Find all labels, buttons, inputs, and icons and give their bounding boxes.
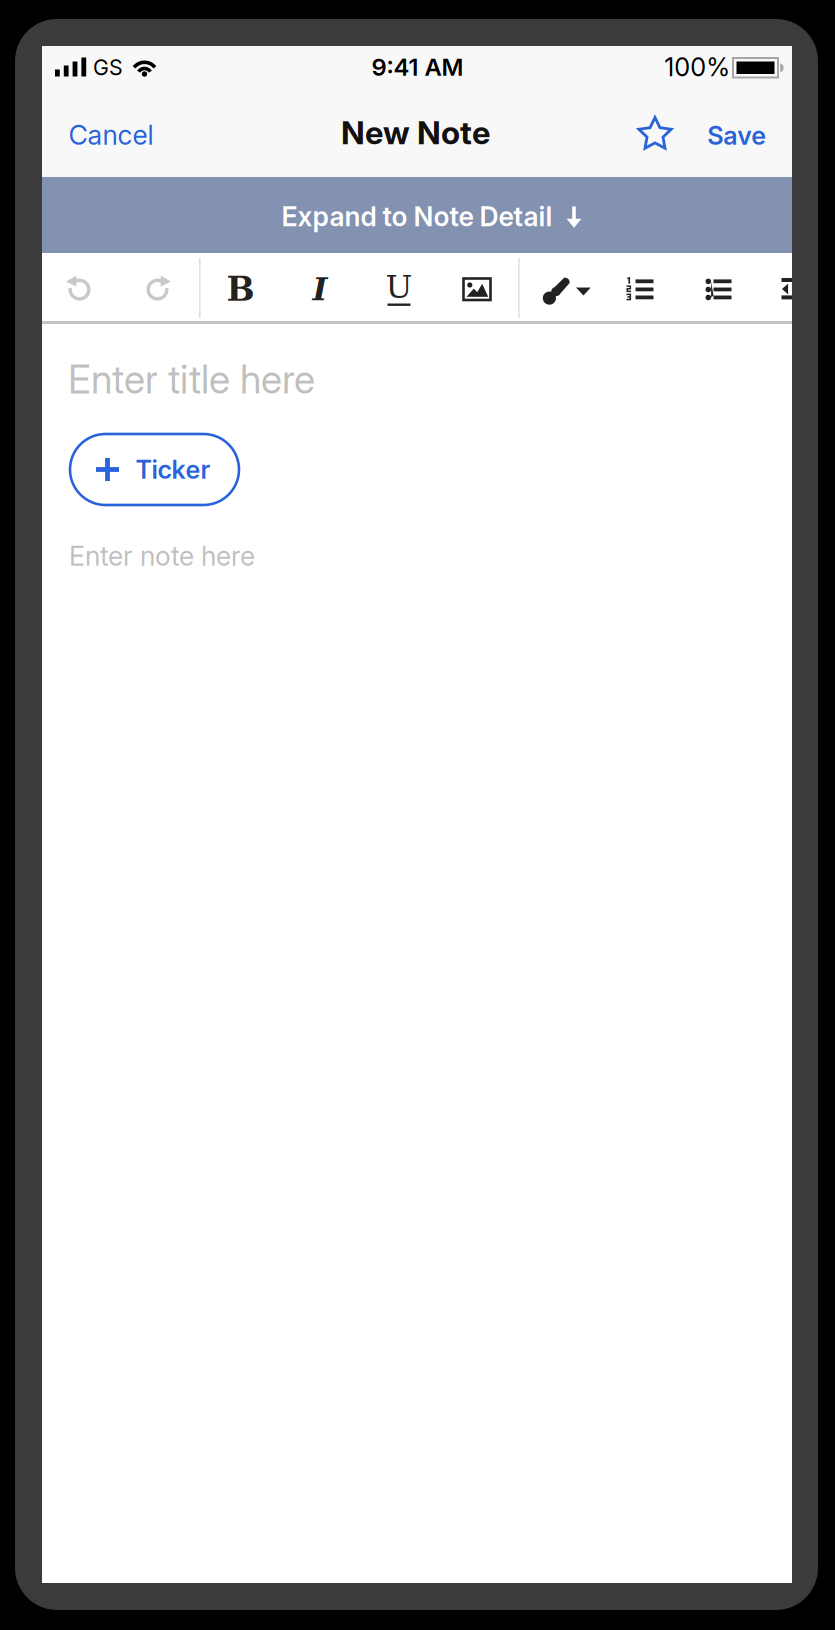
staticText: I xyxy=(312,270,327,308)
button[interactable]: Undo xyxy=(61,271,97,305)
button[interactable]: Italic xyxy=(294,261,346,317)
button[interactable]: Cancel xyxy=(68,119,153,151)
button[interactable]: Ticker xyxy=(70,434,239,505)
staticText: 9:41 AM xyxy=(371,53,463,81)
staticText: U xyxy=(385,268,412,306)
staticText: B xyxy=(226,269,254,309)
button[interactable]: Text color xyxy=(541,275,593,305)
button[interactable]: Outdent xyxy=(781,275,792,303)
button[interactable]: Favorite xyxy=(632,111,678,157)
button[interactable]: Underline xyxy=(373,259,425,315)
staticText: GS xyxy=(93,55,123,80)
button[interactable]: Save xyxy=(707,121,766,150)
button[interactable]: Bulleted list xyxy=(699,275,733,303)
button[interactable]: Insert image xyxy=(461,275,493,303)
staticText: Enter note here xyxy=(69,540,255,572)
staticText: Expand to Note Detail xyxy=(281,201,552,232)
button[interactable]: Numbered list xyxy=(624,275,658,303)
staticText: Enter title here xyxy=(68,357,315,402)
button[interactable]: Expand to Note Detail xyxy=(42,177,792,253)
button[interactable]: Bold xyxy=(214,261,266,317)
staticText: 100% xyxy=(664,52,730,82)
staticText: New Note xyxy=(341,114,490,151)
staticText: Cancel xyxy=(68,119,153,151)
button[interactable]: Redo xyxy=(139,271,175,305)
staticText: Ticker xyxy=(135,455,210,484)
staticText: Save xyxy=(707,121,766,150)
